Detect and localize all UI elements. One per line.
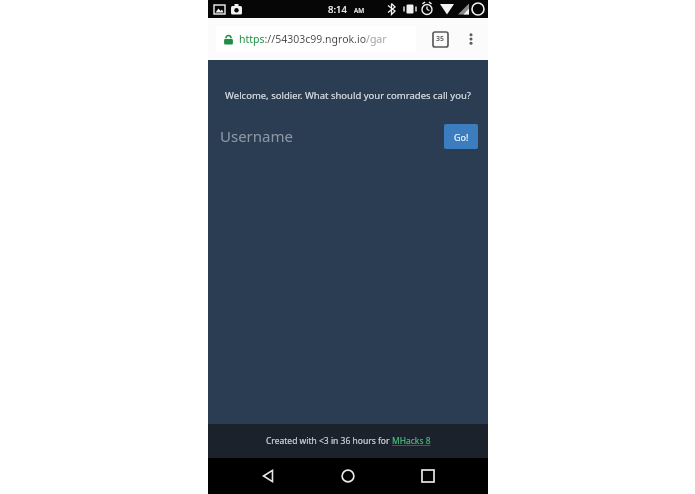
staticText: AM: [354, 6, 365, 15]
button[interactable]: Back: [248, 458, 288, 494]
button[interactable]: MHacks 8: [392, 435, 431, 447]
staticText: Welcome, soldier. What should your comra…: [218, 89, 478, 102]
button[interactable]: Go!: [444, 124, 478, 149]
staticText: https://54303c99.ngrok.io/gar: [239, 32, 387, 46]
button[interactable]: Home: [328, 458, 368, 494]
staticText: Go!: [454, 131, 469, 143]
staticText: Username: [220, 126, 293, 146]
staticText: 8:14: [328, 3, 347, 16]
button[interactable]: Tabs, 35 open: [427, 26, 453, 52]
button[interactable]: Username: [220, 123, 444, 149]
staticText: MHacks 8: [392, 435, 431, 447]
staticText: 35: [436, 34, 445, 44]
button[interactable]: Address bar: [216, 26, 416, 52]
button[interactable]: Recent apps: [408, 458, 448, 494]
button[interactable]: More options: [457, 25, 485, 53]
staticText: Created with <3 in 36 hours for: [266, 435, 392, 447]
